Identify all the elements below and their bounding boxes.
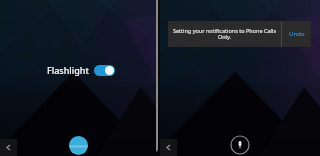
- staticText: Undo: [289, 30, 305, 38]
- button[interactable]: Flashlight: [47, 64, 115, 76]
- button[interactable]: Assistant: [69, 136, 88, 155]
- button[interactable]: Undo: [282, 21, 311, 47]
- staticText: Flashlight: [47, 64, 89, 76]
- button[interactable]: Microphone: [230, 135, 250, 155]
- button[interactable]: Back: [160, 139, 177, 156]
- staticText: Setting your notifications to Phone Call…: [172, 27, 277, 41]
- button[interactable]: Back: [0, 139, 17, 156]
